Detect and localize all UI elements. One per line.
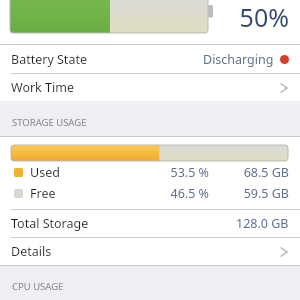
other: Open Details [279,244,289,260]
staticText: Battery State [11,51,87,68]
button[interactable]: Battery State [0,45,300,73]
staticText: 128.0 GB [236,215,289,232]
staticText: Discharging [203,51,274,68]
staticText: Free [30,185,56,202]
staticText: Work Time [11,79,74,96]
staticText: Used [30,164,60,181]
staticText: 59.5 GB [233,185,289,202]
staticText: 53.5 % [157,164,209,181]
other: Open Work Time [279,80,289,96]
button[interactable]: Free [0,183,300,204]
button[interactable]: Work Time [0,74,300,101]
staticText: 50% [239,0,289,34]
staticText: Total Storage [11,215,89,232]
staticText: CPU USAGE [12,280,64,293]
button[interactable]: Used [0,162,300,183]
button[interactable]: Details [0,238,300,265]
staticText: Details [11,243,52,260]
staticText: STORAGE USAGE [12,116,87,129]
staticText: 68.5 GB [233,164,289,181]
staticText: 46.5 % [157,185,209,202]
other: Discharging indicator [280,55,289,64]
button[interactable]: Total Storage [0,210,300,237]
